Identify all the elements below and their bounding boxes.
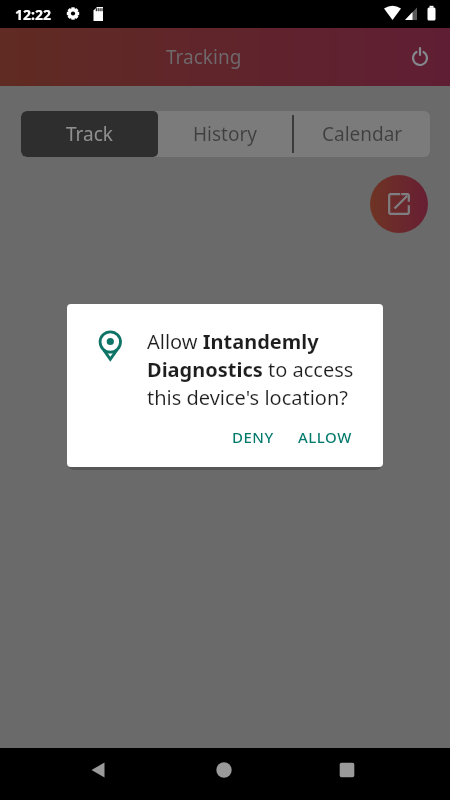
button[interactable]: Calendar <box>294 111 430 157</box>
button[interactable]: ALLOW <box>293 420 357 454</box>
button[interactable] <box>398 35 442 79</box>
staticText: History <box>193 121 257 147</box>
staticText: DENY <box>232 427 274 447</box>
staticText: 12:22 <box>15 5 51 24</box>
button[interactable]: Track <box>21 111 158 157</box>
button[interactable] <box>74 748 122 792</box>
staticText: Allow Intandemly Diagnostics to access t… <box>147 328 354 410</box>
button[interactable]: DENY <box>224 420 281 454</box>
button[interactable]: History <box>158 111 292 157</box>
staticText: Calendar <box>322 121 403 147</box>
staticText: ALLOW <box>298 427 352 447</box>
button[interactable] <box>200 748 248 792</box>
button[interactable] <box>370 175 428 233</box>
button[interactable] <box>323 748 371 792</box>
staticText: Tracking <box>166 44 242 70</box>
staticText: Track <box>66 121 114 147</box>
